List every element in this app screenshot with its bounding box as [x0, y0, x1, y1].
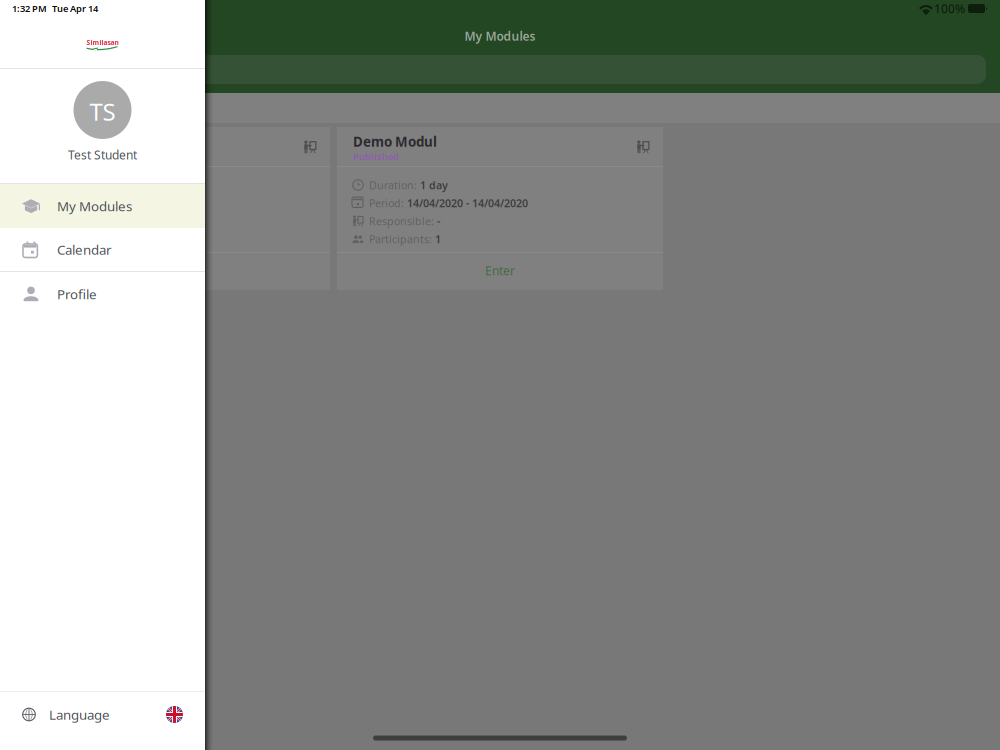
button[interactable]: Profile	[0, 272, 205, 316]
staticText: Enter	[485, 262, 515, 278]
button[interactable]: Enter	[4, 253, 330, 290]
staticText: My Modules	[57, 197, 132, 215]
button[interactable]: My Modules	[0, 184, 205, 228]
staticText: Participants:	[36, 232, 99, 246]
button[interactable]: Calendar	[0, 228, 205, 271]
staticText: Published	[353, 150, 399, 163]
staticText: Tue Apr 14	[52, 2, 98, 15]
staticText: Responsible:	[369, 214, 434, 228]
staticText: 14/04/2020 - 14/04/2020	[74, 196, 195, 210]
staticText: 1	[435, 232, 441, 246]
staticText: Participants:	[369, 232, 432, 246]
staticText: Similasan	[86, 38, 118, 47]
staticText: Profile	[57, 285, 97, 303]
staticText: 1 day	[420, 178, 448, 192]
staticText: TS	[89, 96, 115, 127]
staticText: 1 day	[87, 178, 115, 192]
staticText: 1:32 PM	[12, 2, 47, 15]
staticText: 14/04/2020 - 14/04/2020	[407, 196, 528, 210]
staticText: Language	[49, 706, 110, 723]
staticText: Demo Modul	[353, 133, 437, 150]
staticText: Period:	[369, 196, 404, 210]
staticText: 100%	[934, 0, 965, 16]
staticText: Duration:	[369, 178, 417, 192]
staticText: -	[437, 214, 440, 228]
staticText: My Modules	[464, 28, 535, 44]
button[interactable]: Language	[0, 692, 205, 750]
button[interactable]: Enter	[337, 253, 663, 290]
staticText: Calendar	[57, 241, 112, 258]
staticText: Period:	[36, 196, 71, 210]
staticText: Enter	[152, 262, 182, 278]
staticText: Duration:	[36, 178, 84, 192]
staticText: Test Student	[68, 147, 137, 163]
staticText: Demo Modul	[20, 133, 104, 150]
